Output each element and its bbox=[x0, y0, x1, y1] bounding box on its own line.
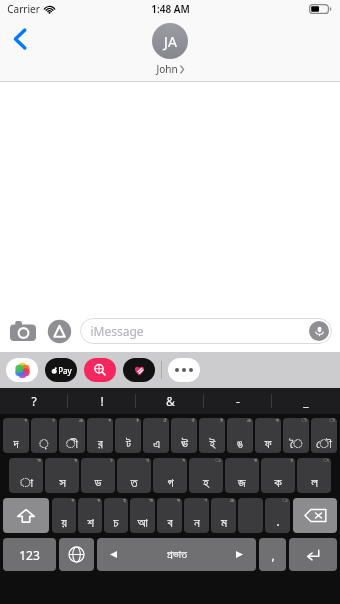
staticText: 123 bbox=[19, 547, 40, 563]
button[interactable]: ৗ bbox=[311, 418, 337, 453]
staticText: ঘ bbox=[182, 458, 185, 463]
button[interactable]: ষ bbox=[78, 498, 102, 533]
button[interactable]: ঞ bbox=[211, 498, 236, 533]
button[interactable]: য bbox=[52, 498, 76, 533]
staticText: ঠ bbox=[136, 418, 139, 423]
button[interactable]: JA bbox=[152, 23, 188, 76]
staticText: দ bbox=[13, 438, 19, 450]
button[interactable]: অ bbox=[9, 458, 43, 493]
staticText: ঔ bbox=[191, 418, 195, 423]
staticText: ঞ bbox=[79, 418, 83, 423]
staticText: আ bbox=[137, 517, 148, 530]
button[interactable]: ঞ bbox=[227, 418, 253, 453]
staticText: ঐ bbox=[163, 418, 167, 423]
staticText: ঢ bbox=[52, 418, 55, 423]
button[interactable]: ঝ bbox=[225, 458, 259, 493]
button[interactable]: Camera bbox=[8, 316, 38, 346]
staticText: ং bbox=[323, 458, 329, 463]
staticText: ৌ bbox=[316, 438, 332, 450]
staticText: ঞ bbox=[230, 498, 234, 503]
staticText: . bbox=[276, 512, 280, 530]
button[interactable]: ণ bbox=[184, 498, 209, 533]
button[interactable]: Back bbox=[3, 22, 37, 56]
button[interactable]: ঔ bbox=[171, 418, 197, 453]
staticText: চ bbox=[113, 517, 119, 530]
button[interactable]: খ bbox=[261, 458, 295, 493]
staticText: শ bbox=[87, 517, 94, 530]
button[interactable]: ৰ bbox=[87, 418, 113, 453]
button[interactable]: অ bbox=[130, 498, 155, 533]
button[interactable]: ঢ bbox=[81, 458, 115, 493]
button[interactable]: Apple Pay bbox=[45, 358, 77, 382]
button[interactable]: ঞ bbox=[59, 418, 85, 453]
staticText: ৰ bbox=[108, 418, 111, 423]
staticText: ণ bbox=[204, 498, 207, 503]
button[interactable]: , bbox=[259, 538, 286, 571]
button[interactable]: Search bbox=[84, 358, 116, 382]
button[interactable]: More apps bbox=[168, 358, 200, 382]
button[interactable]: ? bbox=[0, 388, 68, 414]
button[interactable]: প্রভাত bbox=[97, 538, 256, 571]
staticText: ৗ bbox=[301, 418, 307, 423]
button[interactable]: Photos bbox=[6, 358, 38, 382]
staticText: প্রভাত bbox=[167, 549, 187, 560]
button[interactable]: ধ bbox=[3, 418, 29, 453]
staticText: হ bbox=[203, 477, 209, 490]
button[interactable]: ছ bbox=[104, 498, 128, 533]
staticText: ৈ bbox=[290, 438, 303, 450]
staticText: John bbox=[156, 62, 178, 76]
button[interactable]: - bbox=[204, 388, 272, 414]
button[interactable]: Change keyboard bbox=[59, 538, 94, 571]
button[interactable]: ঢ bbox=[31, 418, 57, 453]
button[interactable]: ৗ bbox=[283, 418, 309, 453]
staticText: _ bbox=[303, 393, 309, 409]
button[interactable]: Return bbox=[289, 538, 337, 571]
staticText: ছ bbox=[123, 498, 126, 503]
button[interactable] bbox=[238, 498, 263, 533]
staticText: ত bbox=[130, 477, 138, 490]
button[interactable]: ঠ bbox=[115, 418, 141, 453]
button[interactable]: Backspace bbox=[293, 498, 337, 533]
staticText: ৗ bbox=[329, 418, 335, 423]
button[interactable]: ষ bbox=[45, 458, 79, 493]
button[interactable]: ভ bbox=[157, 498, 182, 533]
button[interactable]: ভ bbox=[255, 418, 281, 453]
staticText: গ bbox=[167, 477, 174, 490]
staticText: র bbox=[98, 438, 103, 450]
staticText: য় bbox=[61, 517, 67, 530]
button[interactable]: iMessage bbox=[80, 318, 332, 344]
button[interactable]: ঈ bbox=[199, 418, 225, 453]
staticText: ম bbox=[221, 517, 227, 530]
staticText: ঈ bbox=[220, 418, 223, 423]
staticText: ভ bbox=[276, 418, 279, 423]
staticText: Carrier bbox=[7, 2, 40, 16]
staticText: অ bbox=[37, 458, 41, 463]
staticText: , bbox=[271, 547, 275, 563]
staticText: ই bbox=[209, 438, 216, 450]
staticText: ঃ bbox=[282, 498, 288, 503]
button[interactable]: & bbox=[136, 388, 204, 414]
button[interactable]: ঐ bbox=[143, 418, 169, 453]
button[interactable]: ! bbox=[68, 388, 136, 414]
staticText: ফ bbox=[264, 438, 272, 450]
button[interactable]: Digital Touch bbox=[123, 358, 155, 382]
button[interactable]: ং bbox=[297, 458, 331, 493]
staticText: ল bbox=[311, 477, 318, 490]
button[interactable]: _ bbox=[272, 388, 340, 414]
staticText: া bbox=[20, 477, 33, 490]
button[interactable]: ঘ bbox=[153, 458, 187, 493]
button[interactable]: 123 bbox=[3, 538, 56, 571]
staticText: ব bbox=[167, 517, 173, 530]
staticText: ঊ bbox=[181, 438, 188, 450]
staticText: য bbox=[71, 498, 74, 503]
button[interactable]: ঃ bbox=[189, 458, 223, 493]
staticText: ন bbox=[194, 517, 200, 530]
button[interactable]: ঃ bbox=[265, 498, 290, 533]
button[interactable]: থ bbox=[117, 458, 151, 493]
staticText: ঙ bbox=[237, 438, 243, 450]
staticText: ষ bbox=[74, 458, 77, 463]
button[interactable]: Shift bbox=[3, 498, 49, 533]
staticText: ড bbox=[94, 477, 102, 490]
button[interactable]: App Store bbox=[44, 316, 74, 346]
button[interactable]: Dictate bbox=[309, 321, 329, 341]
